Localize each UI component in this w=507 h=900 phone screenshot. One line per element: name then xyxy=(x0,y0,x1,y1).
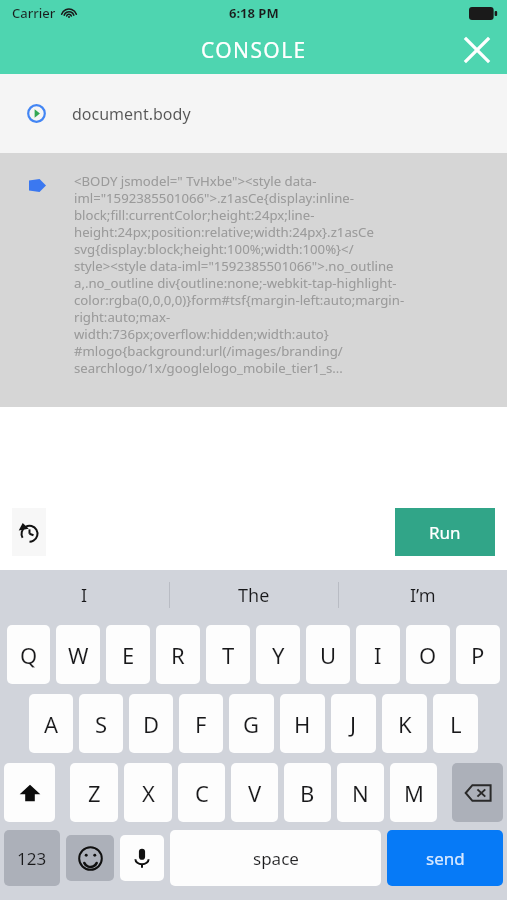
staticText: G xyxy=(243,709,260,739)
staticText: 6:18 PM xyxy=(229,4,279,22)
button[interactable]: D xyxy=(129,694,173,753)
staticText: V xyxy=(248,778,262,808)
staticText: Carrier xyxy=(12,4,56,22)
button[interactable]: L xyxy=(433,694,478,753)
staticText: Run xyxy=(429,521,461,544)
button[interactable]: X xyxy=(124,763,172,822)
button[interactable]: 123 xyxy=(4,830,60,886)
staticText: The xyxy=(238,583,270,608)
button[interactable]: Close xyxy=(455,28,499,72)
button[interactable]: Z xyxy=(70,763,118,822)
staticText: S xyxy=(95,709,108,739)
staticText: B xyxy=(300,778,315,808)
button[interactable]: U xyxy=(306,625,350,684)
button[interactable]: M xyxy=(390,763,437,822)
staticText: T xyxy=(222,640,235,670)
staticText: E xyxy=(122,640,135,670)
button[interactable]: S xyxy=(79,694,123,753)
staticText: C xyxy=(195,778,209,808)
staticText: A xyxy=(44,709,59,739)
button[interactable]: H xyxy=(280,694,325,753)
staticText: CONSOLE xyxy=(201,36,307,65)
button[interactable]: The xyxy=(170,570,338,620)
button[interactable]: Q xyxy=(7,625,50,684)
staticText: M xyxy=(404,778,424,808)
button[interactable]: T xyxy=(206,625,250,684)
button[interactable]: I xyxy=(0,570,169,620)
button[interactable]: G xyxy=(229,694,274,753)
staticText: space xyxy=(253,847,299,870)
button[interactable]: K xyxy=(382,694,427,753)
staticText: D xyxy=(143,709,160,739)
staticText: H xyxy=(294,709,311,739)
button[interactable]: I xyxy=(356,625,400,684)
staticText: <BODY jsmodel=" TvHxbe"><style data- iml… xyxy=(74,172,405,377)
staticText: W xyxy=(68,640,89,670)
button[interactable]: Run xyxy=(395,508,495,556)
button[interactable]: document.body xyxy=(0,74,507,153)
button[interactable]: W xyxy=(56,625,100,684)
staticText: J xyxy=(350,709,357,739)
staticText: X xyxy=(142,778,155,808)
button[interactable]: F xyxy=(179,694,223,753)
button[interactable]: O xyxy=(406,625,450,684)
staticText: Q xyxy=(20,640,38,670)
button[interactable]: B xyxy=(284,763,331,822)
staticText: I xyxy=(374,640,382,670)
button[interactable]: Backspace xyxy=(452,763,503,822)
button[interactable]: E xyxy=(106,625,150,684)
staticText: L xyxy=(450,709,462,739)
button[interactable]: J xyxy=(331,694,376,753)
button[interactable]: A xyxy=(29,694,73,753)
button[interactable]: space xyxy=(170,830,381,886)
button[interactable]: History xyxy=(12,508,46,556)
staticText: R xyxy=(171,640,185,670)
button[interactable]: C xyxy=(178,763,225,822)
staticText: Y xyxy=(272,640,285,670)
staticText: P xyxy=(471,640,485,670)
button[interactable]: I’m xyxy=(339,570,507,620)
staticText: N xyxy=(352,778,369,808)
button[interactable]: send xyxy=(387,830,503,886)
button[interactable]: N xyxy=(337,763,384,822)
button[interactable]: R xyxy=(156,625,200,684)
staticText: O xyxy=(419,640,437,670)
staticText: send xyxy=(426,847,465,870)
staticText: document.body xyxy=(72,103,191,125)
staticText: I xyxy=(81,583,88,608)
button[interactable]: Shift xyxy=(4,763,55,822)
staticText: F xyxy=(195,709,207,739)
staticText: U xyxy=(320,640,337,670)
button[interactable]: Emoji xyxy=(66,835,114,881)
button[interactable]: Y xyxy=(256,625,300,684)
button[interactable]: P xyxy=(456,625,500,684)
button[interactable]: Voice input xyxy=(120,835,164,881)
staticText: K xyxy=(398,709,412,739)
button[interactable]: V xyxy=(231,763,278,822)
staticText: Z xyxy=(88,778,101,808)
staticText: I’m xyxy=(410,583,436,608)
staticText: 123 xyxy=(17,847,47,870)
